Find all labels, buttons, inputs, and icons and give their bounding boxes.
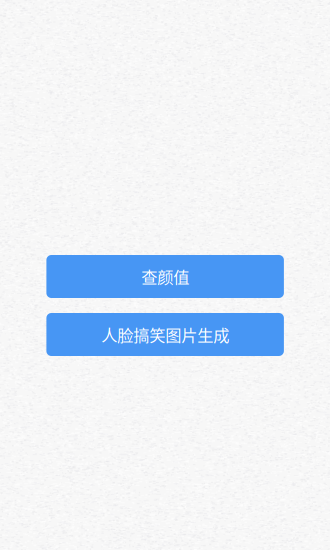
button[interactable]: 查颜值 — [46, 255, 284, 298]
button[interactable]: 人脸搞笑图片生成 — [46, 313, 284, 356]
staticText: 人脸搞笑图片生成 — [101, 323, 229, 346]
staticText: 查颜值 — [141, 265, 189, 288]
